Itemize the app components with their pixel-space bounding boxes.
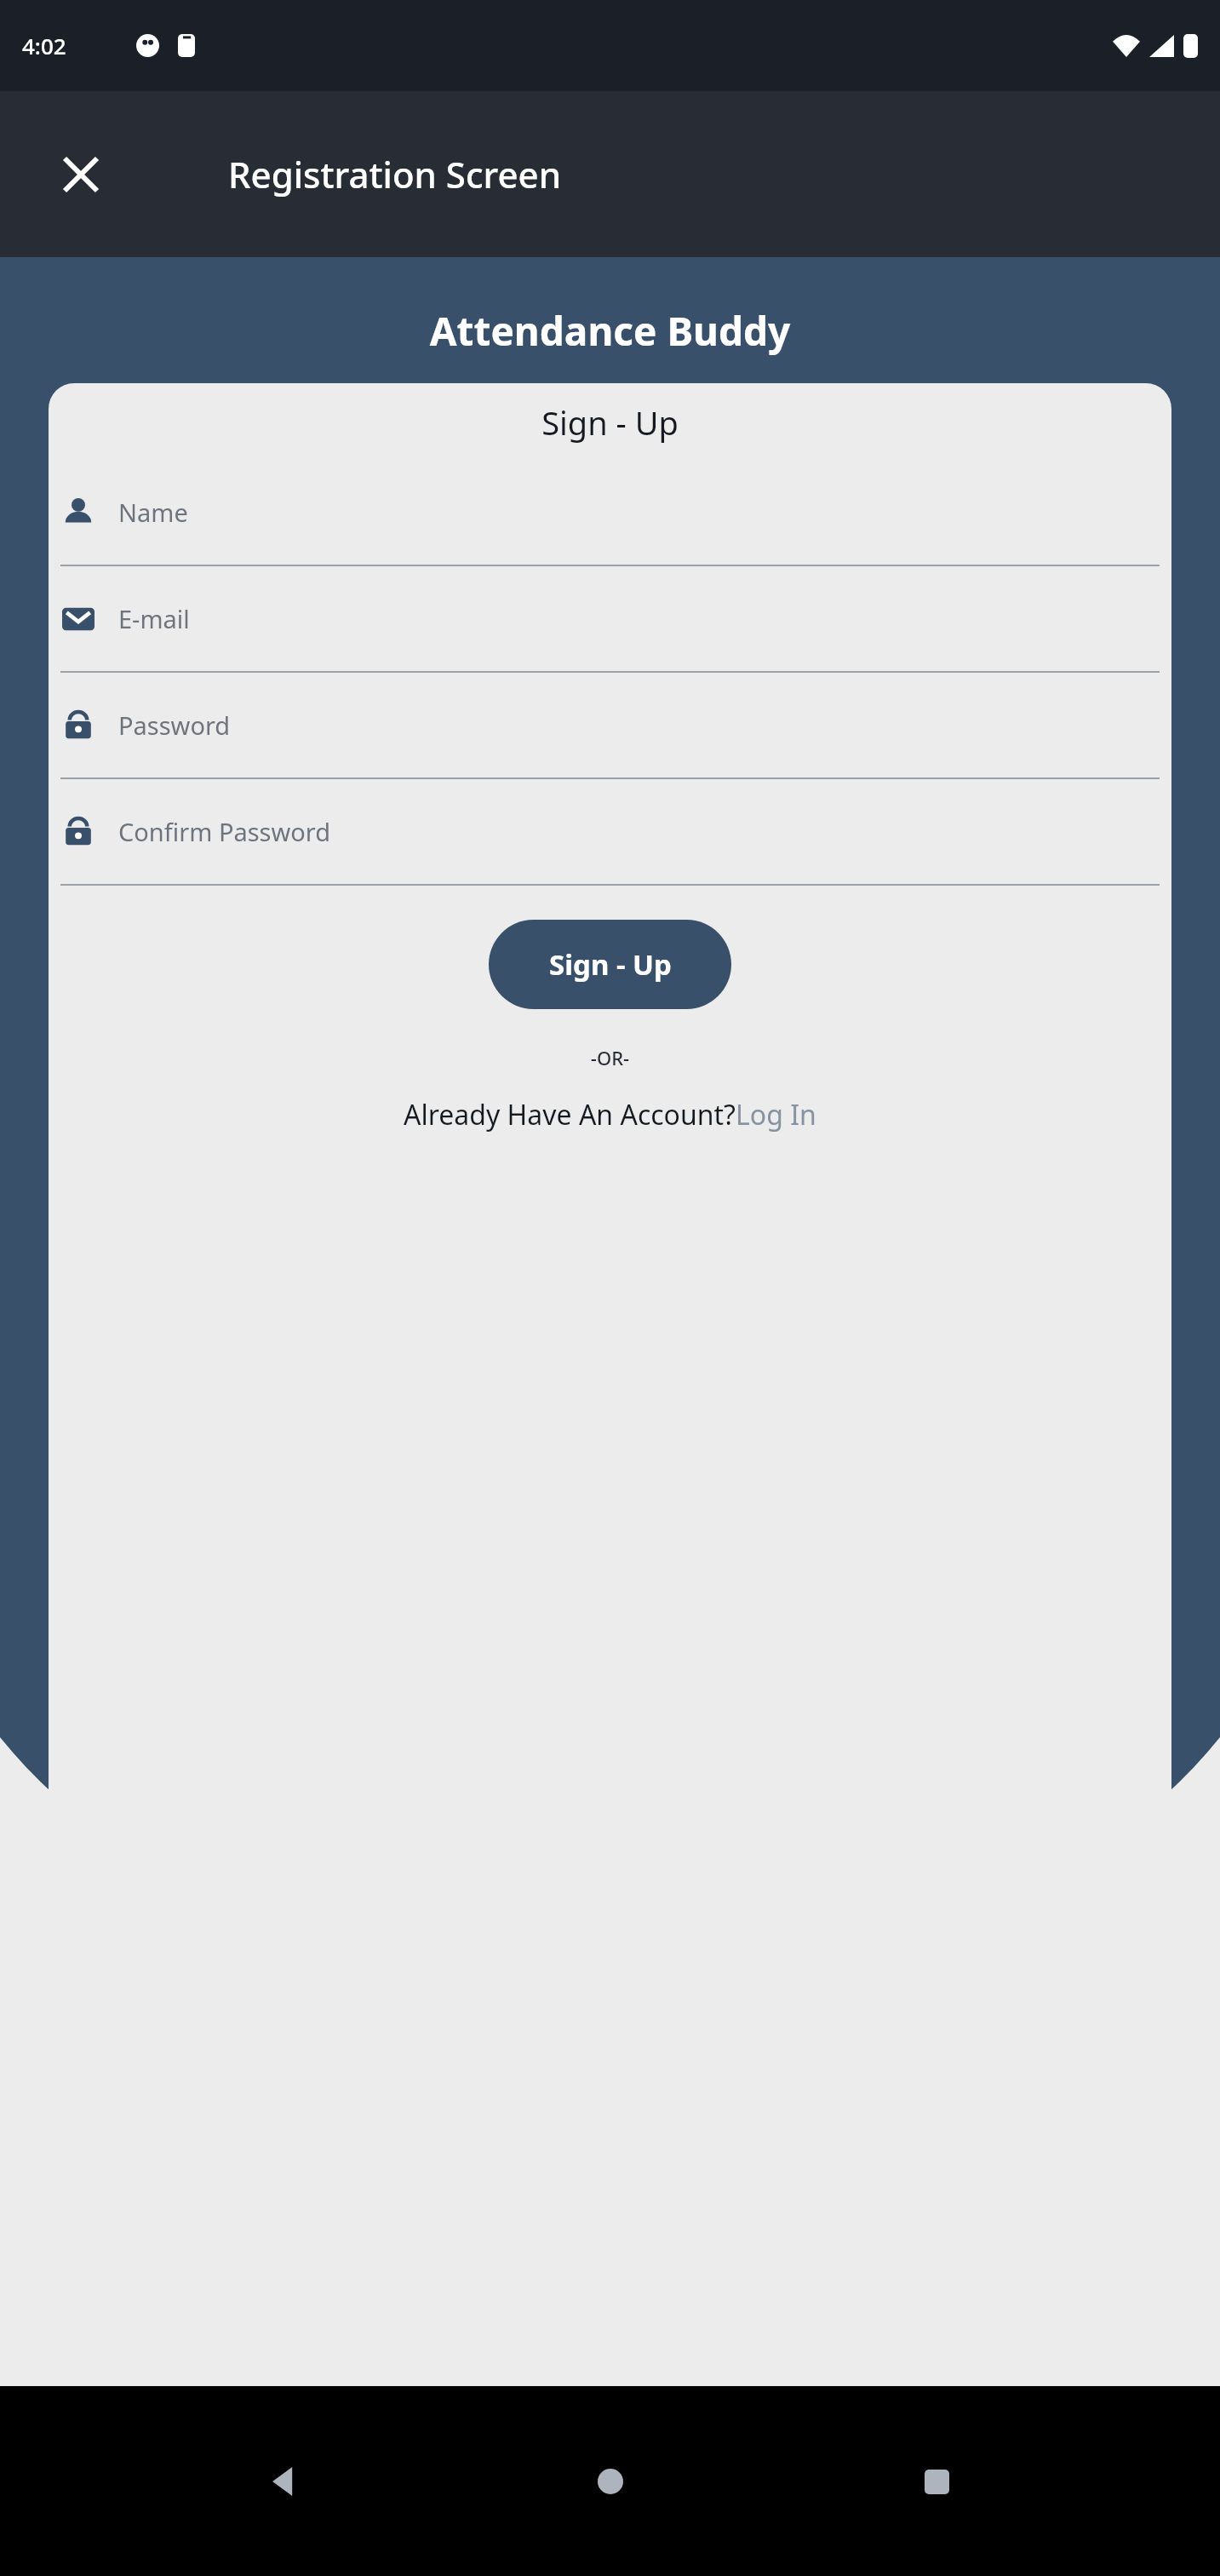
button[interactable]: Close [46, 140, 116, 209]
staticText: Password [118, 709, 231, 742]
button[interactable]: Sign - Up [489, 920, 731, 1009]
button[interactable]: Confirm Password [49, 779, 1171, 886]
staticText: Sign - Up [549, 945, 672, 984]
button[interactable]: Log In [736, 1096, 816, 1133]
button[interactable]: Name [49, 460, 1171, 566]
staticText: Registration Screen [228, 150, 562, 198]
button[interactable]: Password [49, 673, 1171, 779]
staticText: Confirm Password [118, 815, 331, 848]
staticText: -OR- [49, 1045, 1171, 1070]
staticText: E-mail [118, 602, 190, 635]
button[interactable]: Back [241, 2439, 326, 2524]
staticText: Log In [736, 1096, 816, 1133]
staticText: 4:02 [22, 31, 66, 60]
button[interactable]: E-mail [49, 566, 1171, 673]
button[interactable]: Home [568, 2439, 653, 2524]
button[interactable]: Recent apps [894, 2439, 979, 2524]
staticText: Name [118, 496, 188, 529]
staticText: Sign - Up [49, 400, 1171, 445]
staticText: Already Have An Account? [404, 1096, 736, 1133]
staticText: Attendance Buddy [0, 304, 1220, 358]
